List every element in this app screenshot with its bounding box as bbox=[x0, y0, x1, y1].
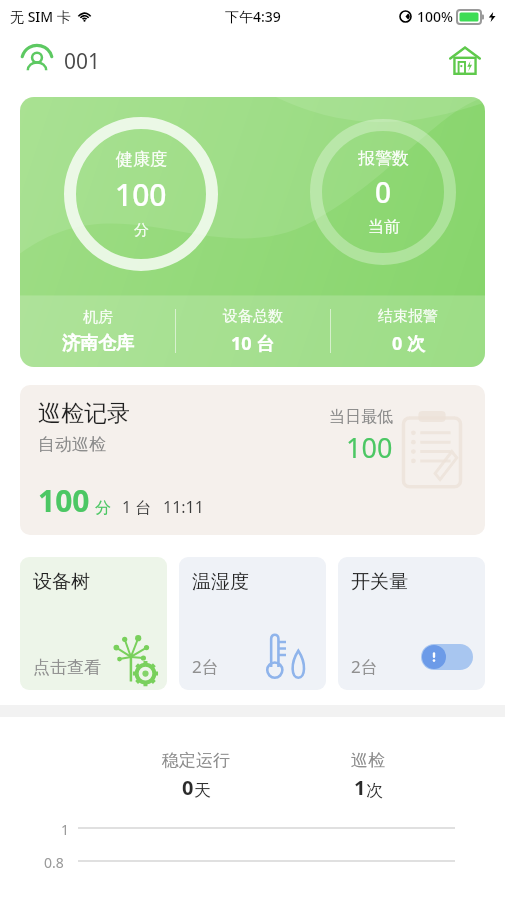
button[interactable]: 开关量 bbox=[338, 557, 485, 690]
staticText: 0 次 bbox=[392, 331, 425, 356]
staticText: 济南仓库 bbox=[62, 332, 134, 355]
staticText: 0.8 bbox=[44, 853, 64, 872]
button[interactable]: 结束报警 bbox=[331, 307, 485, 356]
staticText: 1 bbox=[60, 820, 69, 839]
staticText: 当日最低 bbox=[329, 407, 393, 427]
staticText: 10 台 bbox=[231, 331, 275, 356]
button[interactable]: 设备树 bbox=[20, 557, 167, 690]
staticText: 健康度 bbox=[116, 149, 167, 170]
staticText: 开关量 bbox=[351, 570, 408, 594]
staticText: 巡检 bbox=[351, 750, 385, 771]
staticText: 下午4:39 bbox=[225, 7, 281, 26]
staticText: 设备总数 bbox=[223, 307, 283, 326]
staticText: 机房 bbox=[83, 308, 113, 327]
staticText: 报警数 bbox=[358, 148, 409, 169]
staticText: 结束报警 bbox=[378, 307, 438, 326]
staticText: 100 bbox=[38, 480, 90, 521]
staticText: 分 bbox=[134, 221, 149, 240]
staticText: 0 bbox=[375, 173, 392, 211]
staticText: 001 bbox=[64, 47, 101, 76]
staticText: 稳定运行 bbox=[162, 750, 230, 771]
button[interactable]: 温湿度 bbox=[179, 557, 326, 690]
staticText: 100 bbox=[115, 174, 167, 215]
staticText: 2台 bbox=[192, 655, 219, 678]
button[interactable]: 巡检 bbox=[282, 750, 454, 801]
button[interactable]: 设备总数 bbox=[176, 307, 330, 356]
staticText: 自动巡检 bbox=[38, 434, 106, 455]
staticText: 100% bbox=[417, 7, 453, 26]
staticText: 1 台 bbox=[122, 496, 152, 518]
button[interactable]: 健康度 bbox=[20, 97, 485, 367]
staticText: 分 bbox=[95, 498, 111, 518]
staticText: 次 bbox=[366, 780, 383, 801]
staticText: 100 bbox=[346, 429, 393, 466]
staticText: 天 bbox=[194, 780, 211, 801]
button[interactable]: 稳定运行 bbox=[110, 750, 282, 801]
staticText: 温湿度 bbox=[192, 570, 249, 594]
button[interactable]: 机房 bbox=[20, 308, 175, 355]
staticText: 巡检记录 bbox=[38, 399, 130, 428]
staticText: 点击查看 bbox=[33, 657, 101, 678]
staticText: 当前 bbox=[368, 217, 400, 237]
staticText: 2台 bbox=[351, 655, 378, 678]
staticText: 1 bbox=[354, 774, 366, 801]
staticText: 无 SIM 卡 bbox=[10, 7, 71, 26]
button[interactable]: Home site bbox=[445, 41, 485, 81]
button[interactable]: 巡检记录 bbox=[20, 385, 485, 535]
staticText: 设备树 bbox=[33, 570, 90, 594]
staticText: 0 bbox=[182, 774, 194, 801]
staticText: 11:11 bbox=[163, 496, 204, 518]
button[interactable]: 001 bbox=[20, 40, 101, 82]
